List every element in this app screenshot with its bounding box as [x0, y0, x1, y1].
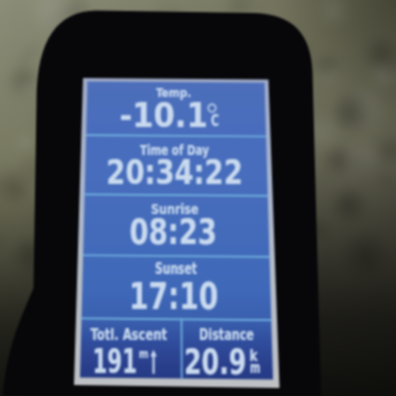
button[interactable]: Bike computer display	[0, 0, 396, 396]
